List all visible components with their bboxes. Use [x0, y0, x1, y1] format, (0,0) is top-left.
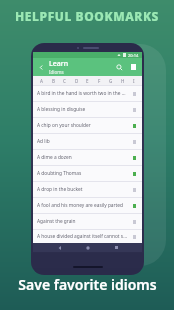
- staticText: C: [63, 78, 66, 84]
- staticText: A doubting Thomas: [37, 170, 127, 177]
- staticText: A chip on your shoulder: [37, 122, 127, 129]
- button[interactable]: Ad lib: [33, 134, 142, 149]
- staticText: Against the grain: [37, 218, 127, 225]
- button[interactable]: A chip on your shoulder: [33, 118, 142, 133]
- button[interactable]: F: [95, 76, 104, 85]
- staticText: F: [98, 78, 101, 84]
- button[interactable]: Bookmark: [130, 106, 138, 114]
- button[interactable]: Against the grain: [33, 214, 142, 229]
- button[interactable]: A bird in the hand is worth two in the b…: [33, 86, 142, 101]
- button[interactable]: Back: [36, 62, 46, 72]
- staticText: Learn: [49, 59, 69, 69]
- staticText: B: [52, 78, 55, 84]
- button[interactable]: E: [83, 76, 92, 85]
- button[interactable]: I: [129, 76, 138, 85]
- button[interactable]: B: [49, 76, 58, 85]
- button[interactable]: Bookmark: [130, 170, 138, 178]
- staticText: A: [40, 78, 43, 84]
- staticText: I: [133, 78, 135, 84]
- button[interactable]: Bookmark: [130, 122, 138, 130]
- button[interactable]: A dime a dozen: [33, 150, 142, 165]
- button[interactable]: D: [72, 76, 81, 85]
- staticText: Idioms: [49, 69, 64, 75]
- staticText: H: [121, 78, 125, 84]
- button[interactable]: Bookmark: [130, 218, 138, 226]
- button[interactable]: Bookmark: [130, 90, 138, 98]
- staticText: D: [75, 78, 79, 84]
- staticText: Ad lib: [37, 138, 127, 145]
- staticText: A drop in the bucket: [37, 186, 127, 193]
- button[interactable]: H: [118, 76, 127, 85]
- staticText: A bird in the hand is worth two in the b…: [37, 90, 127, 97]
- button[interactable]: Bookmarks: [127, 61, 139, 73]
- button[interactable]: A doubting Thomas: [33, 166, 142, 181]
- staticText: 20:14: [128, 53, 139, 58]
- button[interactable]: A blessing in disguise: [33, 102, 142, 117]
- button[interactable]: A: [37, 76, 46, 85]
- button[interactable]: Bookmark: [130, 138, 138, 146]
- button[interactable]: Bookmark: [130, 233, 138, 241]
- button[interactable]: Bookmark: [130, 202, 138, 210]
- button[interactable]: A fool and his money are easily parted: [33, 198, 142, 213]
- button[interactable]: A drop in the bucket: [33, 182, 142, 197]
- staticText: A house divided against itself cannot st…: [37, 233, 127, 240]
- staticText: G: [109, 78, 113, 84]
- button[interactable]: G: [106, 76, 115, 85]
- staticText: E: [86, 78, 89, 84]
- staticText: A fool and his money are easily parted: [37, 202, 127, 209]
- staticText: Save favorite idioms: [18, 275, 157, 294]
- button[interactable]: Search: [113, 61, 125, 73]
- staticText: A blessing in disguise: [37, 106, 127, 113]
- staticText: A dime a dozen: [37, 154, 127, 161]
- button[interactable]: A house divided against itself cannot st…: [33, 230, 142, 243]
- button[interactable]: C: [60, 76, 69, 85]
- staticText: HELPFUL BOOKMARKS: [15, 8, 159, 24]
- button[interactable]: Bookmark: [130, 154, 138, 162]
- button[interactable]: Bookmark: [130, 186, 138, 194]
